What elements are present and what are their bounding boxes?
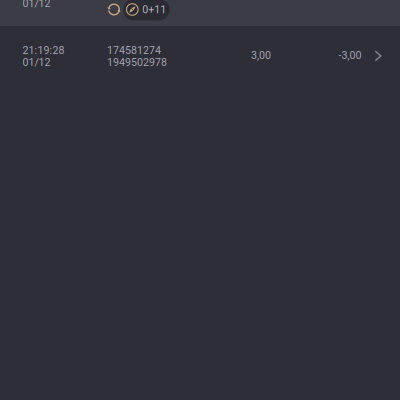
button[interactable]: 21:19:28 (0, 26, 400, 86)
staticText: 1949502978 (107, 56, 167, 69)
staticText: -3,00 (338, 49, 361, 61)
button[interactable]: 01/12 (0, 0, 400, 26)
staticText: 01/12 (22, 56, 50, 69)
staticText: 0+11 (142, 3, 166, 16)
staticText: 21:19:28 (22, 44, 64, 57)
staticText: 01/12 (22, 0, 50, 9)
staticText: 3,00 (251, 49, 271, 61)
staticText: 174581274 (107, 44, 161, 57)
